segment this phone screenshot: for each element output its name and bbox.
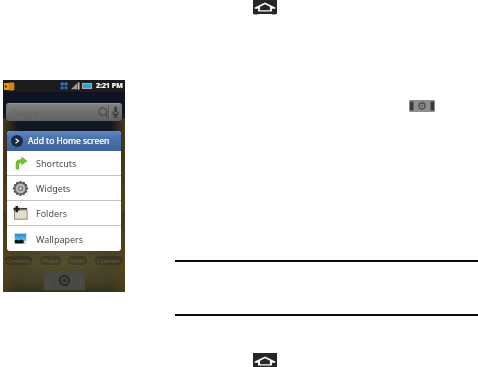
button[interactable]: All apps	[44, 271, 85, 290]
staticText: Folders	[36, 207, 68, 219]
staticText: Google	[12, 107, 39, 118]
staticText: Add to Home screen	[28, 135, 110, 147]
button[interactable]: Add to Home screen	[7, 131, 121, 151]
button[interactable]: Google	[6, 103, 122, 121]
button[interactable]: Shortcuts	[7, 151, 121, 175]
button[interactable]: Email	[70, 256, 85, 265]
staticText: Wallpapers	[36, 233, 84, 245]
staticText: Contacts	[7, 257, 30, 264]
staticText: Email	[70, 257, 85, 264]
button[interactable]: Wallpapers	[7, 226, 121, 251]
staticText: Shortcuts	[36, 157, 77, 169]
button[interactable]: Phone	[42, 256, 59, 265]
button[interactable]: Menu	[409, 100, 435, 112]
staticText: Phone	[42, 257, 59, 264]
button[interactable]: Contacts	[7, 256, 30, 265]
staticText: Calendar	[97, 257, 121, 264]
staticText: 2:21 PM	[96, 81, 123, 91]
staticText: Widgets	[36, 182, 71, 194]
button[interactable]: Widgets	[7, 176, 121, 200]
button[interactable]: Home	[253, 353, 277, 367]
button[interactable]: Home	[253, 0, 277, 14]
button[interactable]: Calendar	[97, 256, 121, 265]
button[interactable]: Folders	[7, 201, 121, 225]
